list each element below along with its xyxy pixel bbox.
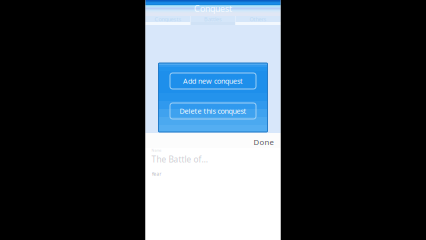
button[interactable]: Battles <box>190 16 235 25</box>
staticText: Delete this conquest <box>179 106 246 116</box>
button[interactable]: Delete this conquest <box>170 103 256 119</box>
staticText: The Battle of… <box>151 154 208 165</box>
staticText: Battles <box>204 15 222 23</box>
button[interactable]: Conquests <box>145 16 190 25</box>
staticText: Year <box>151 171 161 177</box>
staticText: Conquest <box>194 2 232 14</box>
staticText: Conquests <box>154 15 181 23</box>
staticText: Others <box>249 15 266 23</box>
staticText: Done <box>253 137 273 147</box>
staticText: Add new conquest <box>183 76 243 86</box>
button[interactable]: Done <box>253 134 280 147</box>
staticText: Name <box>151 148 161 153</box>
button[interactable]: Others <box>235 16 280 25</box>
button[interactable]: Add new conquest <box>170 73 256 89</box>
